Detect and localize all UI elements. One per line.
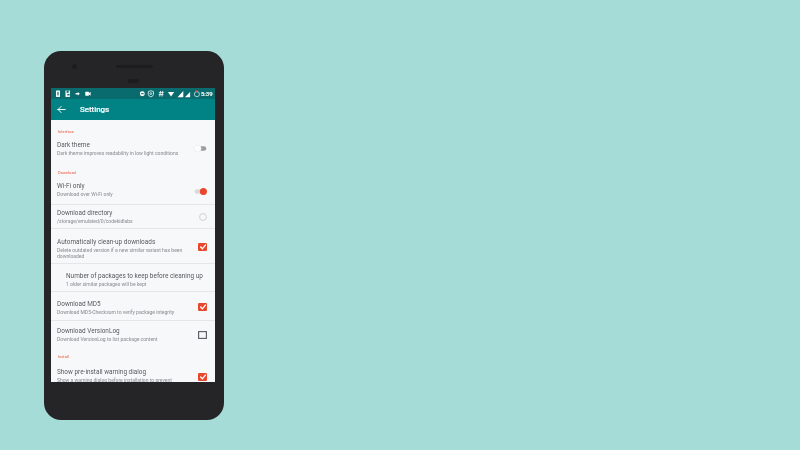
staticText: Download MD5 bbox=[57, 300, 101, 308]
staticText: Show a warning dialog before installatio… bbox=[57, 377, 172, 382]
staticText: Automatically clean-up downloads bbox=[57, 238, 156, 246]
button[interactable]: Choose download directory bbox=[194, 212, 207, 221]
staticText: Download VersionLog bbox=[57, 327, 120, 335]
button[interactable]: Show pre-install warning dialog bbox=[51, 362, 215, 382]
staticText: Interface bbox=[58, 129, 74, 134]
button[interactable]: Checkbox checked bbox=[194, 372, 207, 381]
button[interactable]: Download directory bbox=[51, 205, 215, 228]
button[interactable]: Dark theme bbox=[51, 137, 215, 159]
button[interactable]: Dark theme toggle bbox=[194, 144, 207, 153]
staticText: Download bbox=[58, 170, 76, 175]
staticText: Install bbox=[58, 354, 69, 359]
button[interactable]: Wi-Fi only bbox=[51, 179, 215, 204]
button[interactable]: Checkbox checked bbox=[194, 302, 207, 311]
staticText: Wi-Fi only bbox=[57, 182, 85, 190]
staticText: 5:39 bbox=[201, 90, 213, 97]
staticText: Settings bbox=[80, 105, 110, 114]
staticText: /storage/emulated/0/codekidlabs bbox=[57, 218, 133, 224]
button[interactable]: Download VersionLog bbox=[51, 321, 215, 347]
staticText: Number of packages to keep before cleani… bbox=[66, 272, 203, 280]
staticText: 1 older similar packages will be kept bbox=[66, 281, 147, 287]
staticText: Delete outdated version if a new similar… bbox=[57, 247, 195, 259]
button[interactable]: Back bbox=[51, 99, 72, 120]
button[interactable]: Number of packages to keep before cleani… bbox=[51, 264, 215, 291]
staticText: Dark theme improves readability in low l… bbox=[57, 150, 179, 156]
staticText: Dark theme bbox=[57, 141, 90, 149]
staticText: Download directory bbox=[57, 209, 113, 217]
staticText: Download MD5-Checksum to verify package … bbox=[57, 309, 175, 315]
button[interactable]: Automatically clean-up downloads bbox=[51, 229, 215, 263]
button[interactable]: Download MD5 bbox=[51, 292, 215, 320]
staticText: Download VersionLog to list package cont… bbox=[57, 336, 158, 342]
button[interactable]: Checkbox checked bbox=[194, 242, 207, 251]
staticText: Show pre-install warning dialog bbox=[57, 368, 147, 376]
button[interactable]: Wi-Fi only toggle bbox=[194, 187, 207, 196]
staticText: Download over Wi-Fi only bbox=[57, 191, 113, 197]
button[interactable]: Checkbox unchecked bbox=[194, 330, 207, 339]
